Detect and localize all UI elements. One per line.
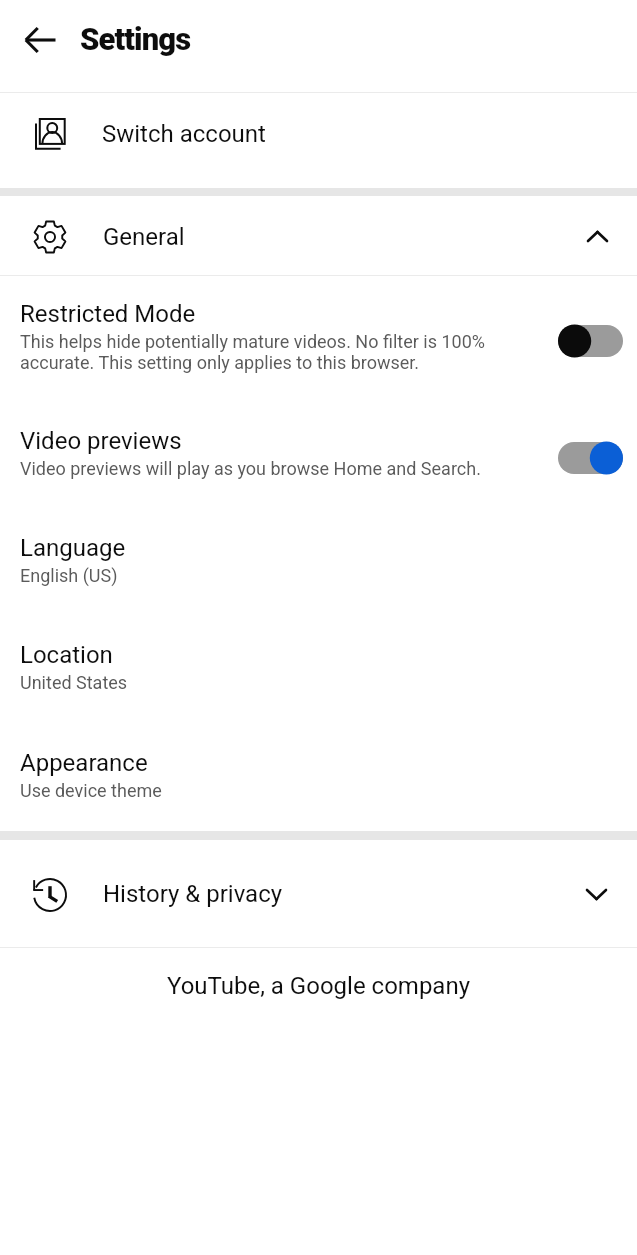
staticText: Appearance bbox=[20, 749, 148, 777]
staticText: English (US) bbox=[20, 565, 118, 586]
button[interactable]: Expand History and privacy bbox=[569, 863, 624, 925]
staticText: Settings bbox=[80, 21, 191, 57]
button[interactable]: General bbox=[0, 196, 637, 275]
staticText: accurate. This setting only applies to t… bbox=[20, 352, 420, 373]
staticText: Use device theme bbox=[20, 780, 162, 801]
button[interactable]: History & privacy bbox=[0, 840, 637, 947]
button[interactable]: Switch account bbox=[0, 93, 637, 188]
button[interactable]: Location bbox=[0, 623, 637, 703]
staticText: This helps hide potentially mature video… bbox=[20, 331, 485, 352]
staticText: Video previews will play as you browse H… bbox=[20, 458, 481, 479]
button[interactable]: Language bbox=[0, 516, 637, 596]
staticText: History & privacy bbox=[103, 880, 283, 908]
button[interactable]: Back bbox=[15, 15, 65, 65]
staticText: General bbox=[103, 223, 185, 251]
button[interactable]: Restricted Mode bbox=[0, 282, 637, 383]
staticText: Location bbox=[20, 641, 113, 669]
staticText: YouTube, a Google company bbox=[0, 972, 637, 1000]
staticText: Restricted Mode bbox=[20, 300, 196, 328]
staticText: United States bbox=[20, 672, 128, 693]
staticText: Switch account bbox=[102, 120, 266, 148]
button[interactable]: Collapse General bbox=[570, 205, 625, 267]
staticText: Video previews bbox=[20, 427, 182, 455]
button[interactable]: Video previews on bbox=[553, 432, 633, 484]
button[interactable]: Appearance bbox=[0, 731, 637, 811]
button[interactable]: Video previews bbox=[0, 409, 637, 489]
staticText: Language bbox=[20, 534, 126, 562]
button[interactable]: Restricted Mode off bbox=[553, 315, 633, 367]
